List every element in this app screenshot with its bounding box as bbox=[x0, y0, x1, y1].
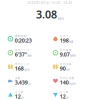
staticText: 下り坂 bbox=[60, 90, 69, 94]
button[interactable]: カロリー bbox=[53, 32, 98, 46]
staticText: 198 bbox=[60, 37, 69, 44]
staticText: 歩数 bbox=[15, 76, 21, 80]
button[interactable]: 運動時間 bbox=[8, 32, 53, 46]
staticText: cm bbox=[66, 68, 69, 71]
staticText: 平均速度 bbox=[60, 48, 72, 52]
staticText: 上り坂 bbox=[15, 90, 24, 94]
staticText: 90 bbox=[60, 65, 66, 72]
button[interactable]: 上り坂 bbox=[8, 88, 53, 100]
staticText: 140 bbox=[60, 79, 69, 86]
staticText: 9.07 bbox=[60, 51, 70, 58]
staticText: 歩 bbox=[28, 82, 31, 85]
button[interactable]: 歩数 bbox=[8, 74, 53, 88]
staticText: m bbox=[66, 96, 68, 99]
button[interactable]: 平均歩幅 bbox=[53, 60, 98, 74]
button[interactable]: 下り坂 bbox=[53, 88, 98, 100]
staticText: 12 bbox=[15, 93, 21, 100]
staticText: 0:20:23 bbox=[15, 37, 32, 44]
staticText: km/h bbox=[70, 54, 76, 57]
button[interactable]: 平均速度 bbox=[53, 46, 98, 60]
staticText: 3,439 bbox=[15, 79, 28, 86]
staticText: 平均歩幅 bbox=[60, 62, 72, 66]
staticText: m bbox=[21, 96, 23, 99]
staticText: spm bbox=[24, 68, 29, 71]
staticText: 6'37" bbox=[15, 51, 27, 58]
staticText: 12 bbox=[60, 93, 66, 100]
staticText: kcal bbox=[69, 40, 73, 43]
staticText: km bbox=[58, 15, 64, 21]
staticText: /km bbox=[27, 54, 31, 57]
staticText: 3.08 bbox=[36, 7, 57, 21]
staticText: 168 bbox=[15, 65, 24, 72]
staticText: 平均心拍数 bbox=[60, 76, 75, 80]
staticText: 平均ペース bbox=[15, 48, 30, 52]
staticText: bpm bbox=[69, 82, 75, 85]
button[interactable]: 平均ペース bbox=[8, 46, 53, 60]
staticText: 運動時間 bbox=[15, 34, 27, 38]
button[interactable]: 平均ピッチ bbox=[8, 60, 53, 74]
staticText: 2025/01/01(水) 16:20 - 16:45 bbox=[27, 1, 72, 5]
button[interactable]: 平均心拍数 bbox=[53, 74, 98, 88]
staticText: カロリー bbox=[60, 34, 72, 38]
staticText: 平均ピッチ bbox=[15, 62, 30, 66]
